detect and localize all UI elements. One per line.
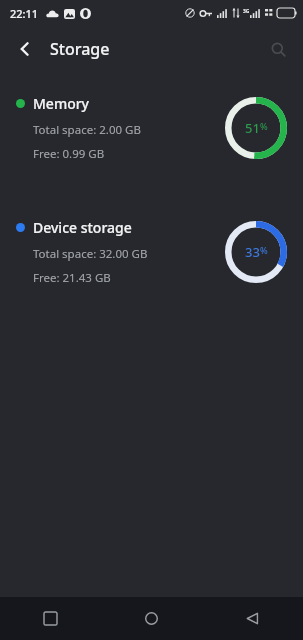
staticText: % [260,120,268,132]
staticText: Memory [33,94,90,113]
staticText: % [260,244,268,256]
button[interactable]: Device storage [0,218,303,286]
button[interactable]: Memory [0,94,303,162]
button[interactable]: Back [202,597,303,640]
staticText: 33 [245,243,260,261]
staticText: 22:11 [10,6,39,21]
staticText: Free: 21.43 GB [33,270,111,286]
staticText: Total space: 2.00 GB [33,122,141,138]
button[interactable]: Search [261,32,295,66]
staticText: 3G [243,8,250,15]
button[interactable]: Recent apps [0,597,101,640]
button[interactable]: Back [8,32,42,66]
button[interactable]: Home [101,597,202,640]
staticText: Device storage [33,218,132,237]
staticText: Total space: 32.00 GB [33,246,148,262]
staticText: Free: 0.99 GB [33,146,105,162]
staticText: Storage [50,38,110,60]
staticText: 51 [245,119,260,137]
